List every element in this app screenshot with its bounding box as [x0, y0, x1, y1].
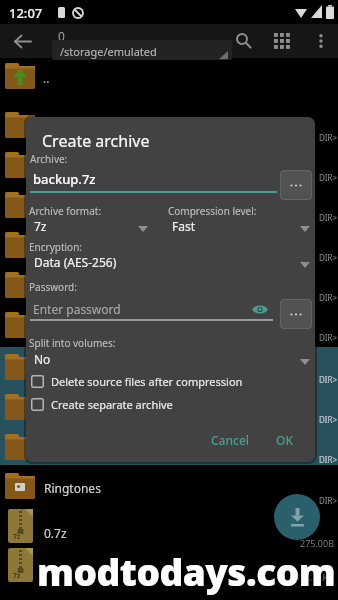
- staticText: backup.7z: [33, 170, 96, 188]
- staticText: 275.00B: [299, 537, 334, 549]
- staticText: Password:: [29, 280, 77, 294]
- button[interactable]: [269, 28, 295, 54]
- button[interactable]: Cancel: [198, 427, 262, 453]
- staticText: DIR>: [318, 495, 337, 506]
- staticText: Fast: [172, 218, 196, 234]
- staticText: /storage/emulated: [60, 44, 157, 59]
- staticText: modtodays.com: [38, 547, 337, 597]
- staticText: 7z: [13, 571, 21, 581]
- staticText: modtodays.com: [37, 547, 336, 597]
- button[interactable]: [231, 28, 257, 54]
- button[interactable]: [308, 28, 334, 54]
- staticText: modtodays.com: [37, 546, 336, 596]
- staticText: OK: [276, 432, 293, 448]
- staticText: DIR>: [318, 292, 337, 303]
- staticText: 976.34KB: [294, 571, 334, 583]
- staticText: DIR>: [318, 374, 337, 385]
- staticText: DIR>: [318, 332, 337, 343]
- staticText: Cancel: [211, 432, 250, 448]
- button[interactable]: /storage/emulated: [52, 40, 232, 60]
- button[interactable]: [30, 216, 160, 236]
- staticText: Encryption:: [29, 240, 83, 254]
- staticText: Delete source files after compression: [51, 374, 243, 389]
- button[interactable]: [168, 216, 314, 236]
- staticText: Enter password: [33, 301, 121, 317]
- staticText: DIR>: [318, 454, 337, 465]
- staticText: 0.7z: [44, 525, 67, 541]
- staticText: Archive format:: [29, 204, 102, 218]
- button[interactable]: [0, 466, 338, 506]
- button[interactable]: [0, 506, 338, 546]
- staticText: Archive:: [30, 152, 68, 166]
- button[interactable]: Delete source files after compression: [30, 373, 260, 391]
- staticText: 12:07: [9, 4, 43, 22]
- button[interactable]: [0, 58, 338, 98]
- button[interactable]: [280, 299, 312, 329]
- staticText: DIR>: [318, 212, 337, 223]
- staticText: Create archive: [42, 130, 150, 152]
- button[interactable]: [30, 252, 314, 272]
- staticText: DIR>: [318, 172, 337, 183]
- staticText: 7z: [13, 532, 21, 542]
- staticText: 0: [58, 28, 65, 44]
- staticText: ..: [43, 70, 50, 86]
- button[interactable]: [30, 349, 314, 369]
- staticText: Data (AES-256): [34, 254, 117, 270]
- staticText: DIR>: [318, 252, 337, 263]
- button[interactable]: [6, 28, 40, 54]
- staticText: modtodays.com: [37, 545, 336, 595]
- staticText: DIR>: [318, 414, 337, 425]
- button[interactable]: [274, 494, 320, 540]
- staticText: 7z: [34, 218, 47, 234]
- button[interactable]: Create separate archive: [30, 396, 260, 414]
- staticText: No: [34, 351, 51, 367]
- staticText: modtodays.com: [38, 546, 337, 596]
- staticText: modtodays.com: [36, 546, 335, 596]
- staticText: DIR>: [318, 132, 337, 143]
- staticText: Compression level:: [168, 204, 257, 218]
- button[interactable]: OK: [262, 427, 306, 453]
- button[interactable]: [280, 170, 312, 200]
- staticText: Ringtones: [44, 480, 101, 496]
- staticText: Create separate archive: [51, 397, 173, 412]
- staticText: Split into volumes:: [29, 336, 116, 350]
